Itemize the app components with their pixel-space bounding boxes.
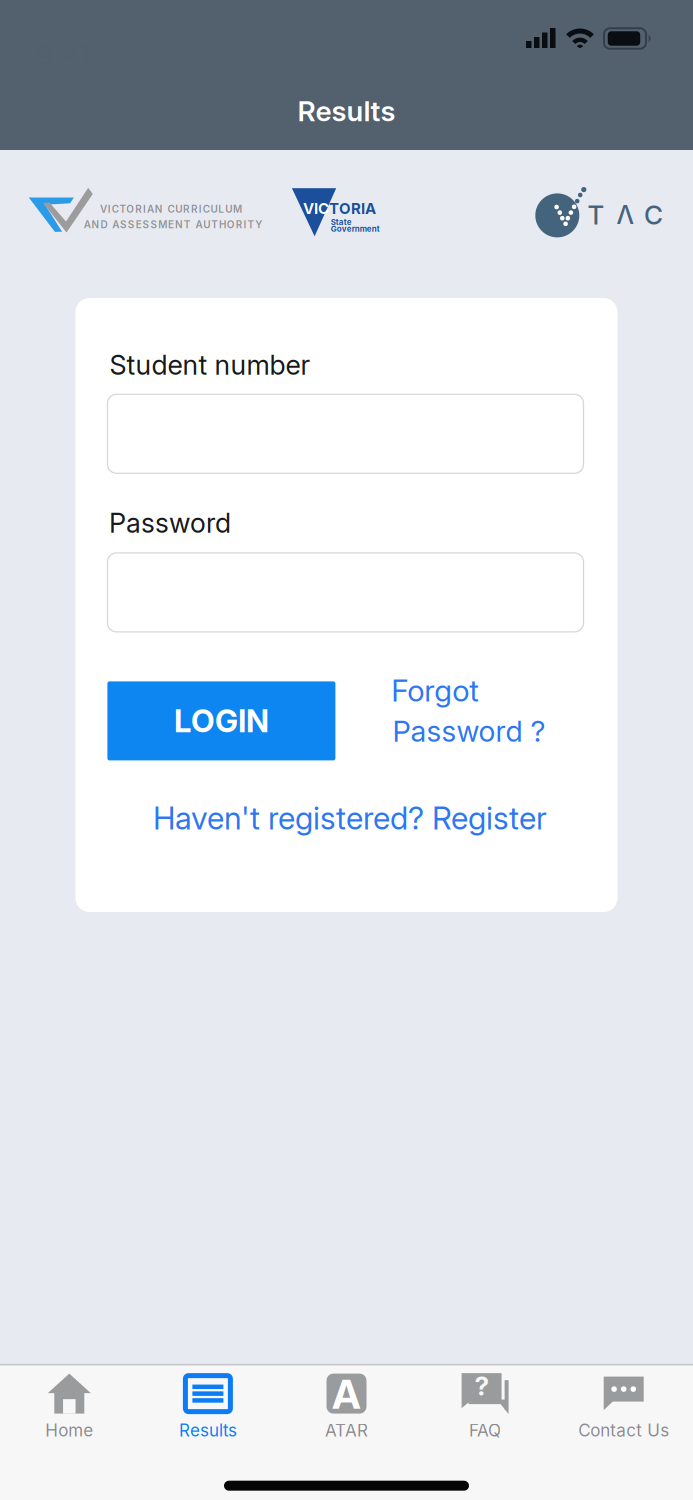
button[interactable]: Results bbox=[139, 1364, 277, 1441]
staticText: A bbox=[332, 1370, 361, 1418]
staticText: Student number bbox=[109, 349, 310, 381]
button[interactable]: Home bbox=[0, 1364, 139, 1441]
button[interactable]: A bbox=[277, 1364, 416, 1441]
staticText: TORIA bbox=[329, 199, 376, 217]
staticText: Password bbox=[109, 507, 231, 539]
staticText: Contact Us bbox=[578, 1420, 669, 1441]
button[interactable]: Haven't registered? Register bbox=[153, 799, 547, 837]
button[interactable]: Contact Us bbox=[554, 1364, 693, 1441]
button[interactable]: LOGIN bbox=[107, 681, 335, 760]
button[interactable]: Student number bbox=[107, 394, 583, 473]
staticText: AND ASSESSMENT AUTHORITY bbox=[84, 218, 262, 231]
staticText: VIC bbox=[303, 199, 329, 217]
staticText: C bbox=[644, 199, 663, 231]
staticText: ? bbox=[475, 1370, 490, 1402]
button[interactable]: Forgot bbox=[389, 674, 589, 755]
staticText: FAQ bbox=[469, 1420, 501, 1441]
staticText: Home bbox=[45, 1420, 93, 1441]
staticText: State bbox=[331, 217, 352, 227]
staticText: T bbox=[587, 199, 604, 231]
staticText: Results bbox=[297, 94, 395, 128]
staticText: ATAR bbox=[325, 1420, 368, 1441]
staticText: Λ bbox=[616, 200, 633, 230]
staticText: LOGIN bbox=[174, 702, 269, 740]
staticText: Password ? bbox=[392, 714, 545, 749]
button[interactable]: ? bbox=[416, 1364, 554, 1441]
staticText: Forgot bbox=[391, 673, 479, 709]
staticText: Results bbox=[179, 1420, 237, 1441]
staticText: Haven't registered? Register bbox=[153, 799, 547, 837]
button[interactable]: Password bbox=[107, 553, 583, 632]
staticText: VICTORIAN CURRICULUM bbox=[100, 203, 242, 215]
staticText: Government bbox=[331, 224, 380, 234]
